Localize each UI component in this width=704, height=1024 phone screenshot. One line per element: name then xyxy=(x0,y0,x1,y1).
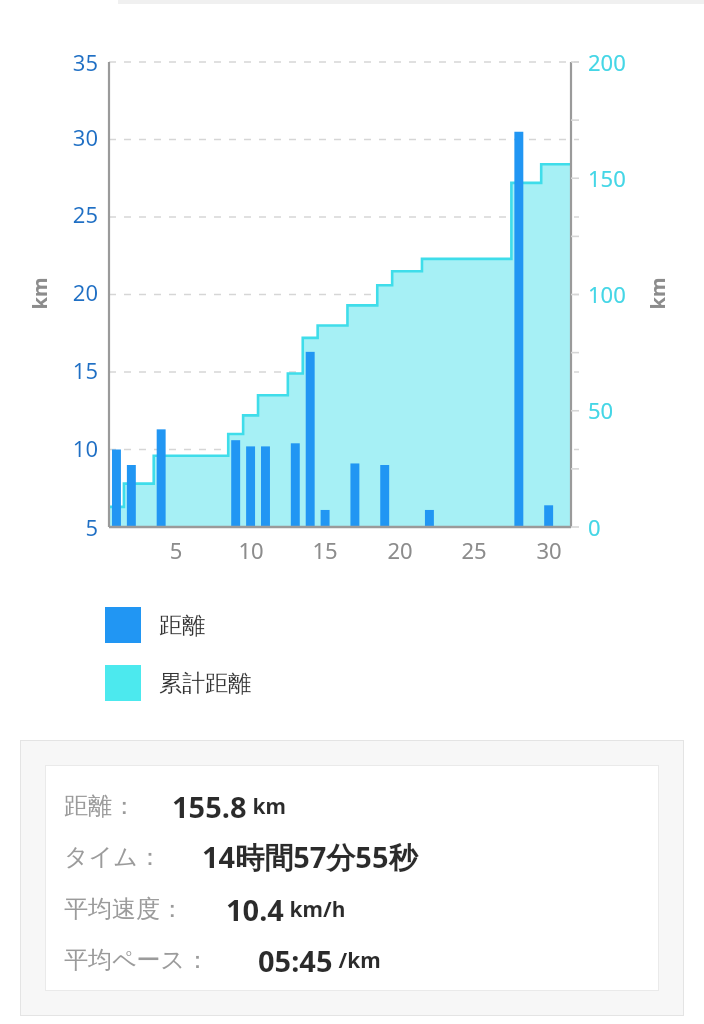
staticText: タイム： xyxy=(64,842,162,872)
staticText: 100 xyxy=(588,279,626,309)
staticText: 20 xyxy=(46,277,98,307)
staticText: 30 xyxy=(523,535,575,565)
button[interactable] xyxy=(20,740,684,1016)
staticText: 5 xyxy=(150,535,202,565)
staticText: 平均速度： xyxy=(64,894,184,924)
staticText: 累計距離 xyxy=(159,669,251,698)
staticText: 35 xyxy=(46,47,98,77)
staticText: 距離： xyxy=(64,791,136,821)
staticText: 14時間57分55秒 xyxy=(202,837,418,877)
staticText: 25 xyxy=(448,535,500,565)
staticText: 20 xyxy=(374,535,426,565)
staticText: km/h xyxy=(284,895,346,924)
button[interactable]: 距離 xyxy=(105,601,205,649)
staticText: 25 xyxy=(46,199,98,229)
staticText: km xyxy=(247,792,286,821)
staticText: 05:45 xyxy=(258,941,333,980)
staticText: 10 xyxy=(46,433,98,463)
staticText: 50 xyxy=(588,395,614,425)
staticText: /km xyxy=(333,946,381,975)
staticText: 10 xyxy=(225,535,277,565)
staticText: 平均ペース： xyxy=(64,945,210,975)
staticText: 15 xyxy=(46,355,98,385)
staticText: 150 xyxy=(588,163,626,193)
staticText: 30 xyxy=(46,122,98,152)
staticText: km xyxy=(643,277,670,309)
staticText: 0 xyxy=(588,512,601,542)
staticText: 200 xyxy=(588,47,626,77)
staticText: 距離 xyxy=(159,611,205,640)
button[interactable]: 累計距離 xyxy=(105,659,251,707)
staticText: 155.8 xyxy=(172,787,247,826)
staticText: 10.4 xyxy=(226,890,284,929)
staticText: 15 xyxy=(299,535,351,565)
staticText: 5 xyxy=(46,512,98,542)
staticText: km xyxy=(25,277,52,309)
